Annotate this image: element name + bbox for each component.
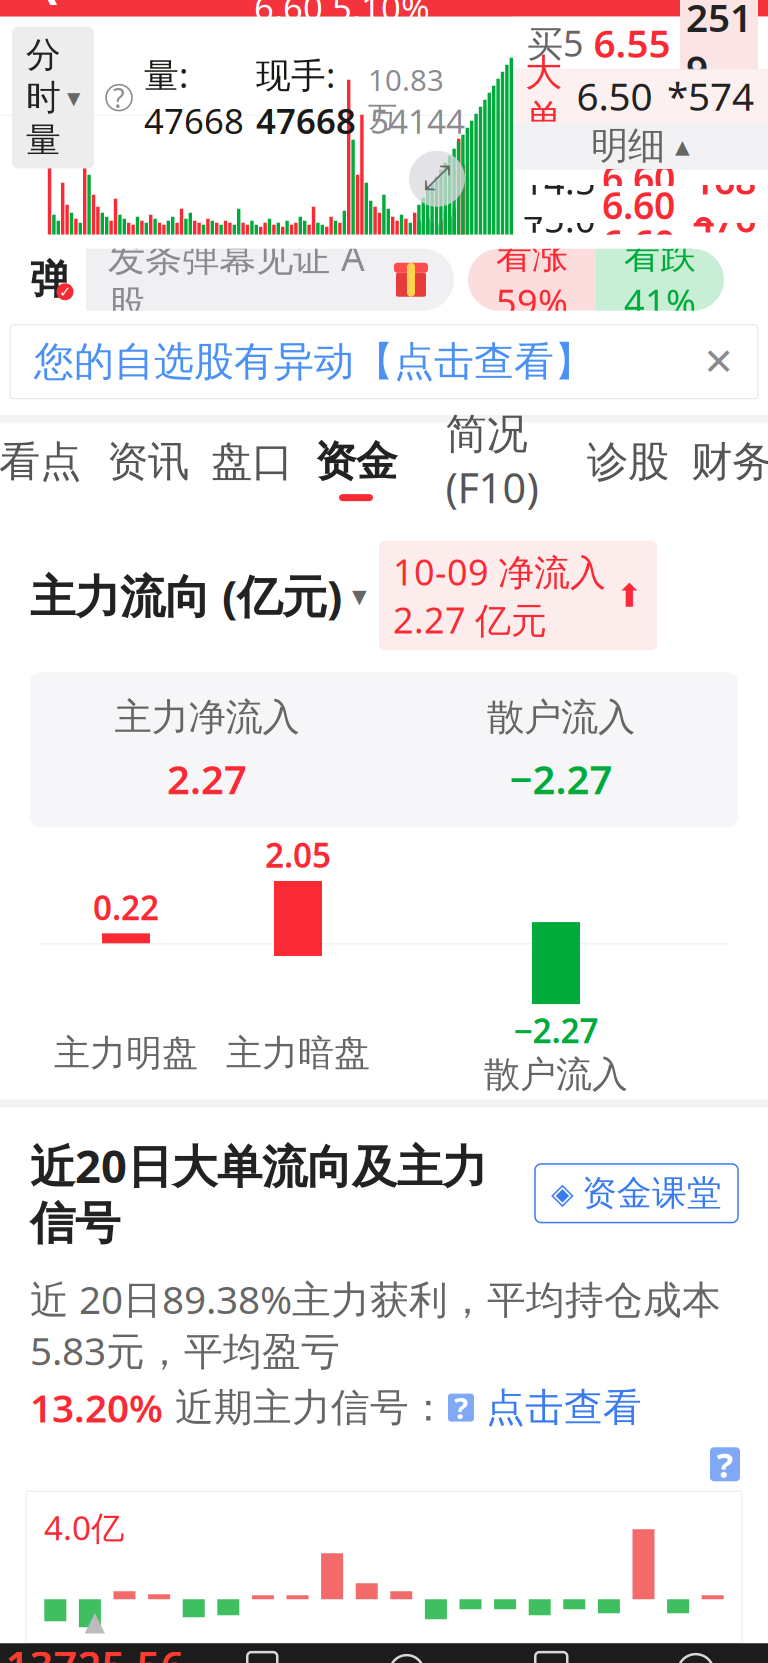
staticText: 现手: 47668: [256, 52, 356, 144]
staticText: 简况(F10): [445, 409, 538, 515]
staticText: 13725.56: [5, 1638, 184, 1663]
staticText: 近20日大单流向及主力信号: [30, 1135, 487, 1251]
button[interactable]: 盘口: [200, 423, 304, 515]
button[interactable]: 功能: [623, 1643, 768, 1663]
staticText: 分时量: [26, 34, 61, 161]
staticText: 6.60: [602, 180, 675, 230]
staticText: ❬: [28, 0, 68, 4]
button[interactable]: AI Assistant: [588, 0, 650, 17]
staticText: 诊股: [587, 436, 669, 487]
staticText: ▾: [352, 579, 367, 612]
staticText: 1122: [693, 128, 756, 227]
staticText: 量: 47668: [144, 52, 244, 144]
button[interactable]: Back: [0, 0, 96, 17]
button[interactable]: 资金: [304, 423, 408, 515]
staticText: 1680: [693, 155, 756, 254]
staticText: 发条弹幕见证 A 股: [108, 232, 365, 327]
staticText: 主力暗盘: [226, 1031, 370, 1075]
staticText: 近期主力信号：: [163, 1384, 448, 1431]
staticText: ?: [113, 80, 125, 115]
staticText: 6.55: [593, 17, 670, 68]
staticText: ?: [716, 1441, 733, 1487]
button[interactable]: 主力流向 (亿元): [30, 565, 367, 626]
staticText: 大单: [525, 50, 562, 142]
staticText: 6.60: [602, 218, 675, 268]
button[interactable]: 财务: [680, 423, 768, 515]
staticText: 您的自选股有异动【点击查看】: [34, 337, 594, 386]
staticText: 看跌41%: [624, 234, 696, 326]
button[interactable]: 看点: [0, 423, 96, 515]
staticText: 15:00: [523, 195, 596, 290]
button[interactable]: 简况(F10): [408, 423, 576, 515]
staticText: 0.22: [93, 885, 159, 929]
staticText: ▾: [67, 82, 80, 113]
staticText: 10-09 净流入 2.27 亿元: [393, 548, 606, 643]
staticText: 10.83万: [368, 60, 444, 135]
staticText: 主力明盘: [54, 1031, 198, 1075]
staticText: 2.27: [167, 752, 247, 805]
staticText: 54144: [370, 99, 465, 143]
staticText: ⤢: [423, 162, 451, 196]
staticText: 14:57: [523, 157, 596, 252]
staticText: 看涨59%: [496, 234, 568, 326]
staticText: ▲: [84, 1606, 105, 1636]
button[interactable]: 明细: [513, 122, 768, 170]
staticText: 11:00: [523, 130, 596, 225]
staticText: 散户流入: [484, 1052, 628, 1097]
staticText: 资金课堂: [582, 1172, 722, 1215]
staticText: 6.60: [602, 153, 675, 203]
staticText: 点击查看: [474, 1384, 642, 1431]
staticText: 财务: [691, 436, 768, 487]
staticText: 近 20日89.38%主力获利，平均持仓成本5.83元，平均盈亏: [30, 1273, 721, 1376]
staticText: ▴: [675, 129, 690, 162]
button[interactable]: Help: [710, 1447, 740, 1481]
staticText: −2.27: [513, 1008, 598, 1052]
button[interactable]: 看涨59%: [468, 249, 724, 311]
staticText: 主力流向 (亿元): [30, 565, 342, 626]
staticText: ⬆: [616, 577, 643, 614]
button[interactable]: ◈: [535, 1164, 738, 1223]
button[interactable]: 删自选: [479, 1643, 623, 1663]
staticText: ◈: [551, 1177, 574, 1210]
button[interactable]: ▲: [0, 1643, 190, 1663]
staticText: 资金: [315, 436, 397, 487]
staticText: *574: [667, 70, 754, 121]
button[interactable]: 弹: [14, 249, 454, 311]
button[interactable]: 资讯: [96, 423, 200, 515]
staticText: ✕: [703, 341, 734, 383]
staticText: 2.05: [265, 833, 331, 877]
staticText: 4.0亿: [44, 1505, 124, 1550]
staticText: 13.20%: [30, 1382, 163, 1433]
staticText: 6.60 5.10%: [254, 0, 430, 30]
staticText: 2519: [686, 0, 752, 94]
staticText: 看点: [0, 436, 81, 487]
staticText: 散户流入: [487, 694, 635, 740]
button[interactable]: 点击查看: [474, 1384, 642, 1431]
staticText: 弹: [30, 255, 70, 304]
staticText: 明细: [591, 123, 665, 169]
staticText: ★: [396, 1658, 418, 1663]
button[interactable]: Search: [678, 0, 740, 17]
staticText: 买5: [527, 19, 584, 67]
button[interactable]: 下单: [190, 1643, 334, 1663]
staticText: 主力净流入: [114, 694, 299, 740]
staticText: 47668: [693, 193, 756, 292]
staticText: ?: [454, 1388, 468, 1427]
staticText: 6.50: [576, 70, 652, 121]
staticText: −2.27: [509, 752, 612, 805]
button[interactable]: 诊股: [576, 423, 680, 515]
staticText: 盘口: [211, 436, 293, 487]
staticText: ✓: [59, 283, 71, 300]
button[interactable]: 分时量: [12, 27, 94, 168]
button[interactable]: 您的自选股有异动【点击查看】: [10, 325, 758, 399]
staticText: 资讯: [107, 436, 189, 487]
button[interactable]: ★: [334, 1643, 479, 1663]
